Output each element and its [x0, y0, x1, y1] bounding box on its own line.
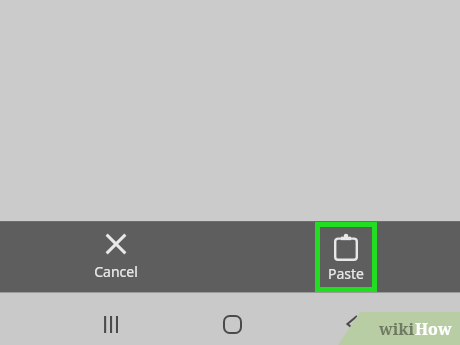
staticText: wiki [379, 318, 415, 340]
staticText: Cancel [78, 262, 154, 281]
staticText: How [415, 318, 452, 340]
button[interactable]: Recent apps [88, 300, 136, 345]
staticText: Paste [320, 264, 372, 283]
button[interactable]: Home [208, 300, 256, 345]
button[interactable]: Back [328, 300, 376, 345]
button[interactable]: Cancel [78, 231, 154, 287]
button[interactable]: Paste [315, 222, 377, 292]
